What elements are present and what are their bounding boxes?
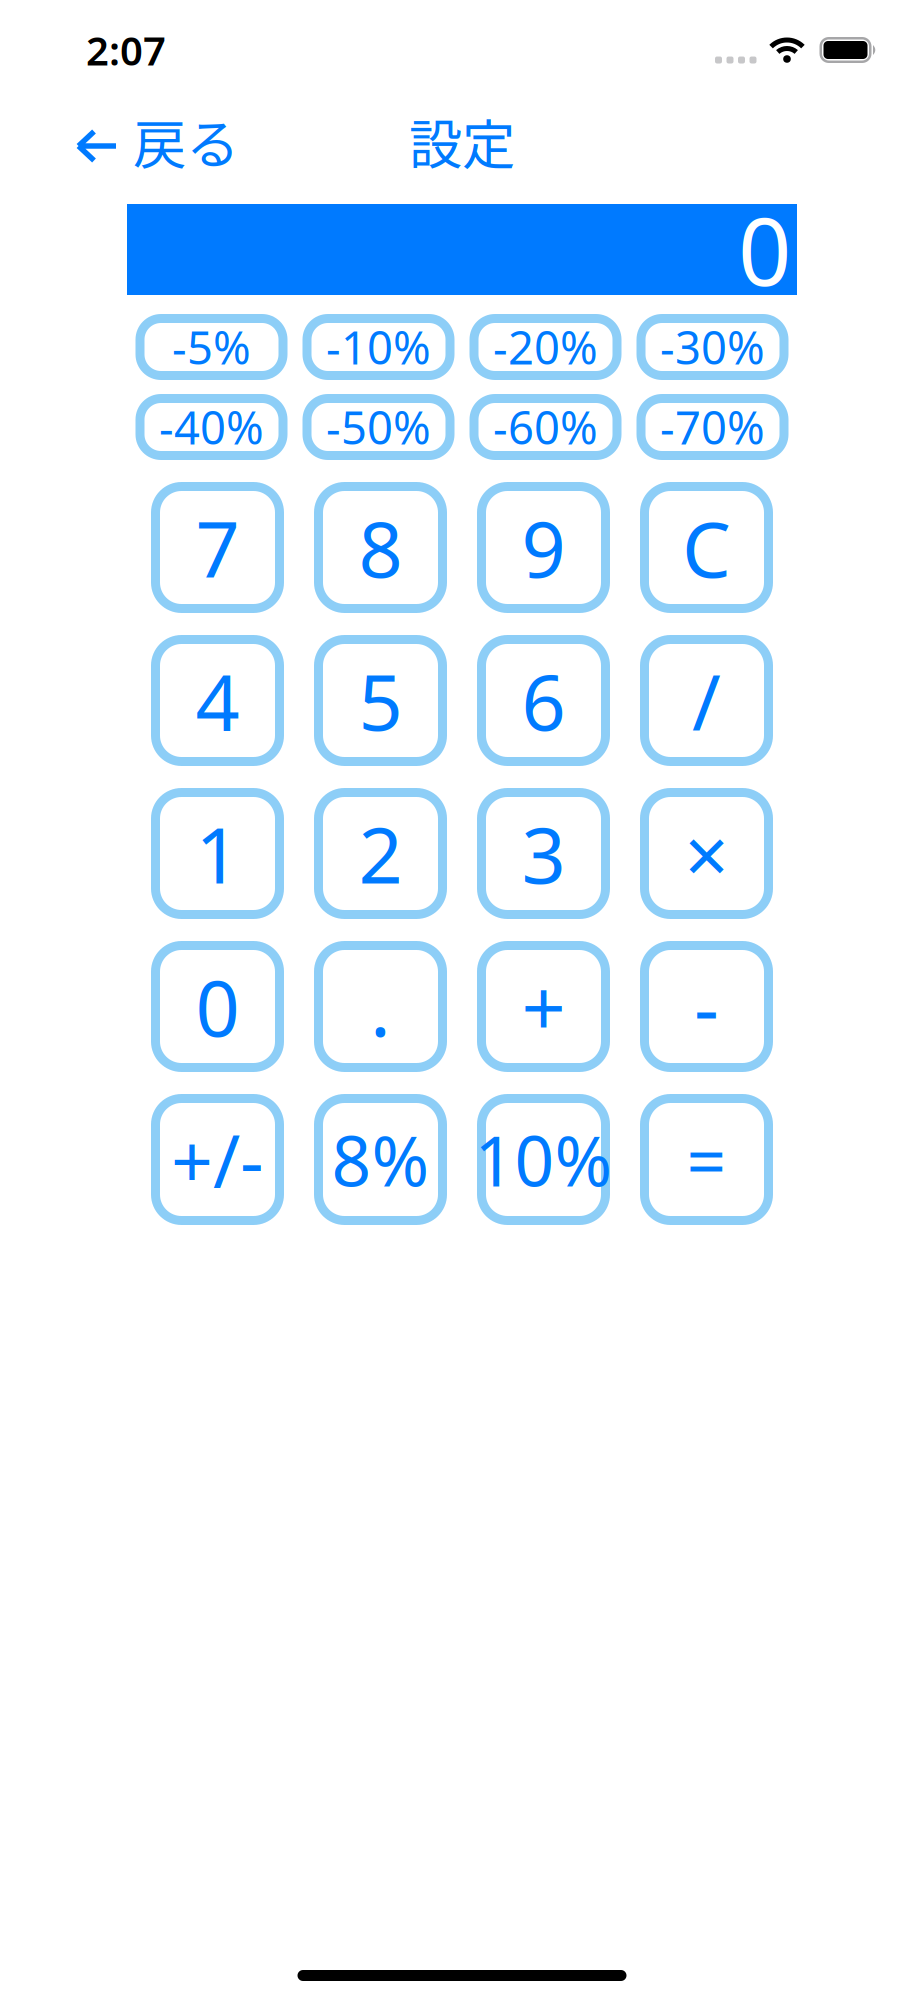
button[interactable]: -60% <box>469 394 621 460</box>
staticText: 3 <box>521 802 565 905</box>
button[interactable]: 8 <box>314 482 447 613</box>
button[interactable]: -40% <box>135 394 287 460</box>
button[interactable]: - <box>640 941 773 1072</box>
button[interactable]: . <box>314 941 447 1072</box>
staticText: 6 <box>521 649 565 752</box>
button[interactable]: -5% <box>135 314 287 380</box>
button[interactable]: -10% <box>302 314 454 380</box>
button[interactable]: 2 <box>314 788 447 919</box>
button[interactable]: 8% <box>314 1094 447 1225</box>
button[interactable]: 7 <box>151 482 284 613</box>
button[interactable]: +/- <box>151 1094 284 1225</box>
button[interactable]: 3 <box>477 788 610 919</box>
button[interactable]: 10% <box>477 1094 610 1225</box>
staticText: 1 <box>195 802 239 905</box>
staticText: +/- <box>171 1111 264 1208</box>
button[interactable]: -70% <box>636 394 788 460</box>
staticText: 8 <box>358 496 402 599</box>
button[interactable]: 4 <box>151 635 284 766</box>
staticText: 0 <box>738 187 791 311</box>
button[interactable]: = <box>640 1094 773 1225</box>
staticText: 2:07 <box>86 23 166 76</box>
button[interactable]: 5 <box>314 635 447 766</box>
staticText: 8% <box>331 1113 429 1206</box>
staticText: 戻る <box>133 102 239 180</box>
staticText: + <box>521 955 565 1058</box>
staticText: 2 <box>358 802 402 905</box>
staticText: -60% <box>493 397 598 457</box>
button[interactable]: 9 <box>477 482 610 613</box>
button[interactable]: 6 <box>477 635 610 766</box>
button[interactable]: -20% <box>469 314 621 380</box>
button[interactable]: + <box>477 941 610 1072</box>
staticText: - <box>694 955 719 1058</box>
staticText: -10% <box>326 317 431 377</box>
staticText: 9 <box>521 496 565 599</box>
button[interactable]: 1 <box>151 788 284 919</box>
button[interactable]: -30% <box>636 314 788 380</box>
staticText: -50% <box>326 397 431 457</box>
staticText: × <box>684 802 728 905</box>
staticText: 設定 <box>409 102 515 180</box>
staticText: C <box>682 496 731 599</box>
button[interactable]: / <box>640 635 773 766</box>
staticText: 4 <box>195 649 239 752</box>
button[interactable]: -50% <box>302 394 454 460</box>
staticText: / <box>692 649 721 752</box>
staticText: 7 <box>195 496 239 599</box>
staticText: 5 <box>358 649 402 752</box>
staticText: -5% <box>172 317 251 377</box>
button[interactable]: C <box>640 482 773 613</box>
button[interactable]: 戻る <box>0 102 239 180</box>
button[interactable]: 0 <box>151 941 284 1072</box>
staticText: 10% <box>474 1113 612 1206</box>
staticText: -70% <box>660 397 765 457</box>
staticText: = <box>686 1113 726 1206</box>
staticText: . <box>370 955 391 1058</box>
staticText: -40% <box>159 397 264 457</box>
button[interactable]: × <box>640 788 773 919</box>
staticText: -30% <box>660 317 765 377</box>
staticText: -20% <box>493 317 598 377</box>
staticText: 0 <box>195 955 239 1058</box>
